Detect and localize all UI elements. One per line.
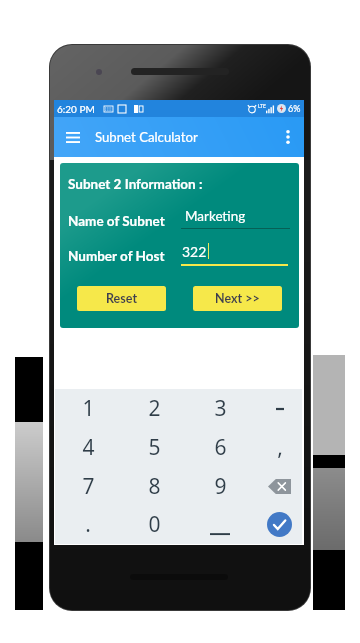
button[interactable] — [187, 505, 253, 544]
staticText: LTE — [258, 103, 266, 109]
button[interactable]: 9 — [187, 467, 253, 506]
staticText: 9 — [214, 472, 227, 501]
button[interactable]: 7 — [55, 467, 121, 506]
button[interactable]: 2 — [121, 389, 187, 428]
button[interactable]: . — [55, 505, 121, 544]
staticText: . — [85, 510, 91, 539]
staticText: Subnet 2 Information : — [68, 176, 203, 192]
staticText: Reset — [106, 291, 138, 306]
staticText: , — [277, 433, 283, 462]
staticText: Number of Host — [68, 248, 165, 264]
button[interactable]: 8 — [121, 467, 187, 506]
button[interactable]: 3 — [187, 389, 253, 428]
staticText: Next >> — [215, 291, 260, 306]
staticText: 4 — [82, 433, 95, 462]
button[interactable]: 6 — [187, 428, 253, 467]
staticText: Subnet Calculator — [95, 129, 198, 145]
button[interactable]: , — [253, 428, 306, 467]
staticText: 2 — [148, 394, 161, 423]
button[interactable]: Open navigation menu — [61, 125, 85, 149]
staticText: 1 — [82, 394, 95, 423]
staticText: 6:20 PM — [57, 103, 95, 115]
staticText: 5 — [148, 433, 161, 462]
staticText: 0 — [148, 510, 161, 539]
button[interactable]: More options — [276, 125, 300, 149]
button[interactable]: 5 — [121, 428, 187, 467]
staticText: 7 — [82, 472, 95, 501]
staticText: 3 — [214, 394, 227, 423]
staticText: Name of Subnet — [68, 213, 165, 229]
staticText: 6% — [288, 103, 301, 114]
staticText: Marketing — [185, 208, 246, 224]
staticText: 8 — [148, 472, 161, 501]
button[interactable]: Done — [253, 505, 306, 544]
button[interactable]: Reset — [77, 286, 166, 311]
button[interactable]: Next >> — [193, 286, 282, 311]
staticText: 6 — [214, 433, 227, 462]
button[interactable]: Delete — [253, 467, 306, 506]
button[interactable]: 4 — [55, 428, 121, 467]
button[interactable] — [253, 389, 306, 428]
staticText: 322 — [182, 243, 207, 260]
button[interactable]: 1 — [55, 389, 121, 428]
button[interactable]: 0 — [121, 505, 187, 544]
